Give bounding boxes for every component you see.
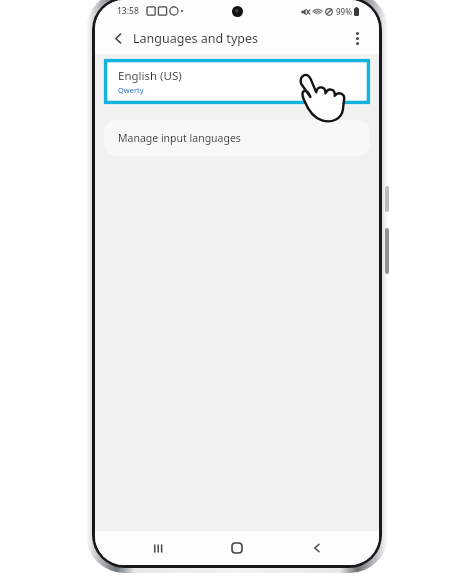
button[interactable]: More options [346, 27, 368, 49]
staticText: English (US) [118, 68, 182, 84]
staticText: Qwerty [118, 85, 144, 95]
button[interactable]: English (US) [104, 59, 370, 104]
staticText: Manage input languages [118, 131, 241, 145]
button[interactable]: Back [300, 531, 334, 565]
button[interactable]: Recents [141, 531, 175, 565]
button[interactable]: Back [107, 27, 129, 49]
staticText: 99% [336, 6, 352, 17]
button[interactable]: Manage input languages [104, 120, 370, 156]
button[interactable]: Home [220, 531, 254, 565]
staticText: 13:58 [117, 5, 139, 17]
staticText: Languages and types [133, 30, 258, 47]
